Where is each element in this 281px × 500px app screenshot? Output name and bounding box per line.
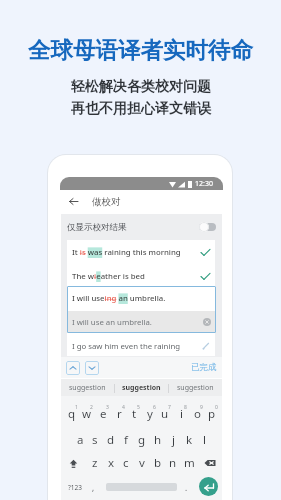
button[interactable]: Shift	[65, 453, 82, 473]
staticText: y	[147, 406, 153, 422]
button[interactable]: y	[142, 404, 158, 424]
staticText: ,	[92, 482, 95, 493]
staticText: 7	[168, 404, 171, 410]
button[interactable]: z	[87, 453, 103, 473]
button[interactable]: r	[111, 404, 127, 424]
button[interactable]: d	[103, 430, 119, 450]
staticText: 全球母语译者实时待命	[28, 36, 253, 64]
button[interactable]: Enter	[199, 477, 218, 496]
staticText: g	[138, 432, 146, 448]
staticText: ?123	[68, 483, 82, 492]
staticText: v	[139, 455, 145, 471]
button[interactable]: Next	[85, 361, 99, 375]
staticText: 5	[137, 404, 140, 410]
button[interactable]: c	[118, 453, 134, 473]
staticText: o	[194, 406, 201, 422]
button[interactable]: 已完成	[191, 362, 217, 373]
button[interactable]: x	[103, 453, 119, 473]
staticText: suggestion	[69, 383, 106, 393]
staticText: The wieather is bed	[72, 271, 145, 282]
staticText: 4	[122, 404, 125, 410]
staticText: f	[124, 432, 128, 448]
button[interactable]: b	[150, 453, 166, 473]
staticText: t	[132, 406, 137, 422]
button[interactable]: e	[95, 404, 111, 424]
button[interactable]: I will use an umbrella.	[67, 311, 216, 333]
button[interactable]: i	[173, 404, 189, 424]
staticText: suggestion	[122, 383, 161, 393]
staticText: x	[108, 455, 115, 471]
button[interactable]: p	[204, 404, 220, 424]
staticText: j	[172, 432, 175, 448]
button[interactable]: g	[134, 430, 150, 450]
staticText: q	[68, 406, 76, 422]
staticText: I will use an umbrella.	[72, 317, 152, 328]
staticText: k	[186, 432, 193, 448]
staticText: 已完成	[191, 362, 217, 373]
staticText: b	[154, 455, 162, 471]
staticText: z	[92, 455, 98, 471]
staticText: l	[203, 432, 206, 448]
staticText: h	[154, 432, 162, 448]
button[interactable]: u	[157, 404, 173, 424]
staticText: I will useing an umbrella.	[72, 293, 166, 304]
staticText: 做校对	[92, 196, 121, 208]
staticText: 0	[215, 404, 218, 410]
button[interactable]: Previous	[66, 361, 80, 375]
staticText: w	[82, 406, 92, 422]
button[interactable]: Backspace	[201, 453, 218, 473]
staticText: 9	[200, 404, 203, 410]
button[interactable]: The wieather is bed	[67, 264, 215, 288]
button[interactable]: v	[134, 453, 150, 473]
button[interactable]: Clear	[203, 318, 211, 326]
button[interactable]: o	[189, 404, 205, 424]
staticText: 1	[75, 404, 78, 410]
staticText: 6	[153, 404, 156, 410]
staticText: p	[208, 406, 216, 422]
button[interactable]: l	[196, 430, 212, 450]
staticText: 12:30	[195, 179, 213, 189]
button[interactable]: 仅显示校对结果	[61, 214, 222, 240]
button[interactable]: f	[118, 430, 134, 450]
button[interactable]: k	[181, 430, 197, 450]
staticText: d	[107, 432, 115, 448]
button[interactable]: ,	[86, 477, 100, 497]
staticText: 8	[184, 404, 187, 410]
button[interactable]: Back	[66, 194, 81, 209]
staticText: 3	[106, 404, 109, 410]
staticText: e	[100, 406, 107, 422]
staticText: 再也不用担心译文错误	[71, 100, 211, 118]
button[interactable]: a	[72, 430, 88, 450]
staticText: n	[169, 455, 177, 471]
button[interactable]: It is was raining this morning	[67, 240, 215, 264]
staticText: suggestion	[177, 383, 214, 393]
button[interactable]: suggestion	[169, 383, 222, 393]
staticText: u	[161, 406, 169, 422]
staticText: 仅显示校对结果	[67, 222, 127, 233]
staticText: It is was raining this morning	[72, 247, 181, 258]
button[interactable]: h	[150, 430, 166, 450]
staticText: I go saw him even the raining	[72, 341, 181, 352]
button[interactable]: j	[165, 430, 181, 450]
staticText: a	[77, 432, 84, 448]
button[interactable]: m	[181, 453, 197, 473]
staticText: m	[184, 455, 195, 471]
button[interactable]: I go saw him even the raining	[67, 336, 215, 356]
button[interactable]: suggestion	[115, 383, 168, 393]
staticText: c	[123, 455, 129, 471]
button[interactable]: suggestion	[61, 383, 114, 393]
staticText: s	[92, 432, 98, 448]
staticText: r	[117, 406, 122, 422]
staticText: .	[185, 482, 188, 493]
button[interactable]: w	[79, 404, 95, 424]
button[interactable]: q	[64, 404, 80, 424]
button[interactable]: ?123	[64, 477, 86, 497]
button[interactable]: .	[179, 477, 193, 497]
button[interactable]: t	[126, 404, 142, 424]
staticText: i	[180, 406, 183, 422]
staticText: 2	[90, 404, 93, 410]
button[interactable]: s	[87, 430, 103, 450]
button[interactable]: n	[165, 453, 181, 473]
staticText: 轻松解决各类校对问题	[71, 78, 211, 96]
